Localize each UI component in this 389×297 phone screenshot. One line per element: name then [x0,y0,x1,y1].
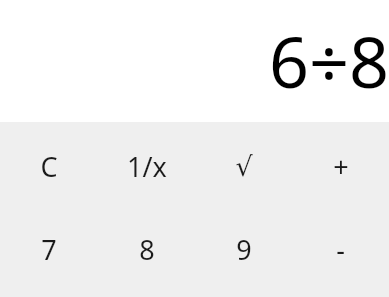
staticText: 8 [139,231,155,268]
button[interactable]: 6÷8 [0,0,389,122]
button[interactable]: 9 [195,210,292,289]
staticText: √ [235,151,253,182]
button[interactable]: 1/x [98,122,195,210]
staticText: 6÷8 [0,13,389,108]
button[interactable]: + [292,122,389,210]
staticText: + [333,148,349,185]
staticText: 9 [236,231,252,268]
button[interactable]: C [0,122,98,210]
button[interactable]: √ [195,122,292,210]
staticText: 1/x [127,148,167,185]
button[interactable]: - [292,210,389,289]
staticText: C [40,148,58,185]
button[interactable]: 7 [0,210,98,289]
staticText: - [336,231,345,268]
staticText: 7 [41,231,57,268]
button[interactable]: 8 [98,210,195,289]
